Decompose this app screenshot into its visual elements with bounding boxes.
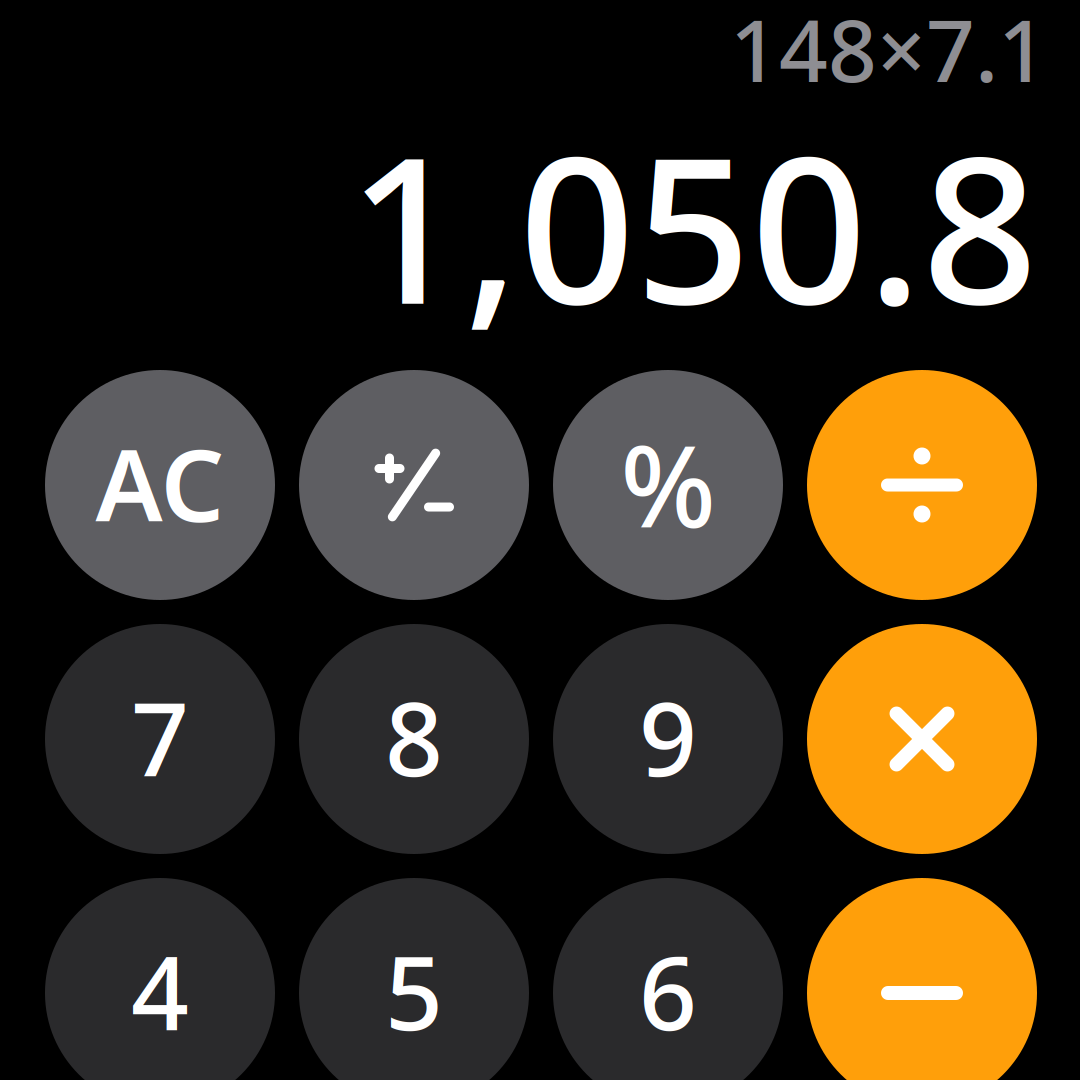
staticText: 6 (639, 924, 697, 1058)
button[interactable]: Divide (807, 370, 1037, 600)
staticText: 8 (385, 670, 443, 804)
button[interactable]: 4 (45, 878, 275, 1080)
button[interactable]: 9 (553, 624, 783, 854)
button[interactable]: 8 (299, 624, 529, 854)
staticText: 5 (385, 924, 443, 1058)
button[interactable]: Multiply (807, 624, 1037, 854)
staticText: 9 (639, 670, 697, 804)
staticText: 148×7.1 (730, 0, 1047, 106)
button[interactable]: Minus (807, 878, 1037, 1080)
staticText: 1,050.8 (348, 90, 1038, 359)
staticText: 4 (131, 924, 189, 1058)
button[interactable]: Plus minus (299, 370, 529, 600)
staticText: 7 (131, 670, 189, 804)
staticText: % (620, 410, 715, 558)
button[interactable]: 7 (45, 624, 275, 854)
button[interactable]: % (553, 370, 783, 600)
button[interactable]: 6 (553, 878, 783, 1080)
button[interactable]: AC (45, 370, 275, 600)
button[interactable]: 5 (299, 878, 529, 1080)
staticText: AC (95, 417, 224, 549)
